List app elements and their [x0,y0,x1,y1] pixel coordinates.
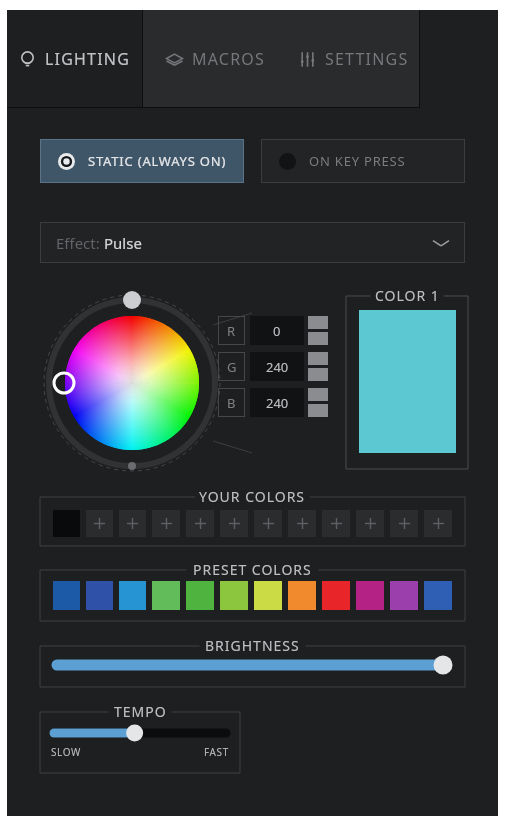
staticText: SLOW [51,745,81,759]
staticText: YOUR COLORS [199,487,306,506]
staticText: 0 [273,322,281,340]
button[interactable]: Add color [186,510,214,537]
button[interactable]: Add color [254,510,282,537]
button[interactable]: Add color [119,510,146,537]
button[interactable]: Add color [288,510,316,537]
staticText: BRIGHTNESS [205,636,300,655]
button[interactable]: Tempo slider [51,725,229,741]
staticText: R [227,322,236,340]
staticText: 240 [266,358,289,376]
staticText: B [227,394,236,412]
staticText: SETTINGS [325,48,409,70]
button[interactable]: STATIC (ALWAYS ON) [40,139,244,183]
button[interactable]: SETTINGS [287,10,419,108]
staticText: TEMPO [114,702,167,721]
staticText: Effect: [56,233,104,253]
staticText: FAST [204,745,229,759]
staticText: 240 [266,394,289,412]
button[interactable]: Add color [152,510,180,537]
button[interactable]: Add color [424,510,452,537]
button[interactable]: Add color [220,510,248,537]
staticText: STATIC (ALWAYS ON) [88,152,227,170]
button[interactable]: MACROS [142,10,287,108]
staticText: PRESET COLORS [193,560,312,579]
button[interactable]: Add color [356,510,384,537]
staticText: ON KEY PRESS [309,152,406,170]
button[interactable]: Add color [322,510,350,537]
button[interactable]: Add color [86,510,113,537]
button[interactable]: ON KEY PRESS [261,139,465,183]
staticText: G [227,358,237,376]
staticText: MACROS [192,48,265,70]
staticText: LIGHTING [45,48,131,70]
button[interactable]: LIGHTING [7,10,142,108]
staticText: COLOR 1 [375,286,440,305]
button[interactable]: Add color [390,510,418,537]
staticText: Pulse [104,233,142,253]
button[interactable]: Effect: [40,222,465,263]
button[interactable]: Brightness slider [53,656,452,674]
